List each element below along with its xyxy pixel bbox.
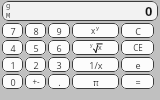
- staticText: 0: [145, 2, 153, 20]
- staticText: 2: [33, 59, 39, 71]
- staticText: CE: [133, 42, 143, 53]
- staticText: 0: [10, 76, 16, 88]
- button[interactable]: .: [48, 74, 70, 89]
- button[interactable]: =: [121, 74, 154, 89]
- staticText: =: [135, 76, 141, 88]
- button[interactable]: C: [121, 23, 154, 38]
- button[interactable]: 8: [25, 23, 46, 38]
- button[interactable]: x: [72, 23, 119, 38]
- staticText: 4: [10, 42, 16, 54]
- button[interactable]: 9: [48, 23, 70, 38]
- staticText: C: [135, 25, 141, 37]
- staticText: 1: [10, 59, 16, 71]
- button[interactable]: 7: [2, 23, 23, 38]
- staticText: π: [93, 76, 99, 88]
- button[interactable]: +-: [25, 74, 46, 89]
- staticText: 3: [56, 59, 62, 71]
- staticText: x: [91, 25, 96, 36]
- button[interactable]: 4: [2, 40, 23, 55]
- button[interactable]: 6: [48, 40, 70, 55]
- button[interactable]: 1/x: [72, 57, 119, 72]
- staticText: 5: [33, 42, 39, 54]
- button[interactable]: CE: [121, 40, 154, 55]
- button[interactable]: Pi: [72, 74, 119, 89]
- staticText: y: [90, 42, 93, 49]
- staticText: 8: [33, 25, 39, 37]
- button[interactable]: y: [72, 40, 119, 55]
- staticText: +-: [32, 76, 40, 87]
- staticText: e: [135, 59, 141, 71]
- staticText: 1/x: [89, 59, 103, 71]
- button[interactable]: e: [121, 57, 154, 72]
- staticText: y: [96, 24, 100, 32]
- staticText: 7: [10, 25, 16, 37]
- staticText: x: [98, 43, 102, 53]
- staticText: 6: [56, 42, 62, 54]
- staticText: .: [58, 76, 61, 88]
- button[interactable]: 5: [25, 40, 46, 55]
- button[interactable]: 2: [25, 57, 46, 72]
- button[interactable]: 1: [2, 57, 23, 72]
- button[interactable]: 0: [2, 74, 23, 89]
- staticText: M: [6, 11, 11, 21]
- staticText: 9: [56, 25, 62, 37]
- button[interactable]: 3: [48, 57, 70, 72]
- staticText: g: [6, 1, 11, 11]
